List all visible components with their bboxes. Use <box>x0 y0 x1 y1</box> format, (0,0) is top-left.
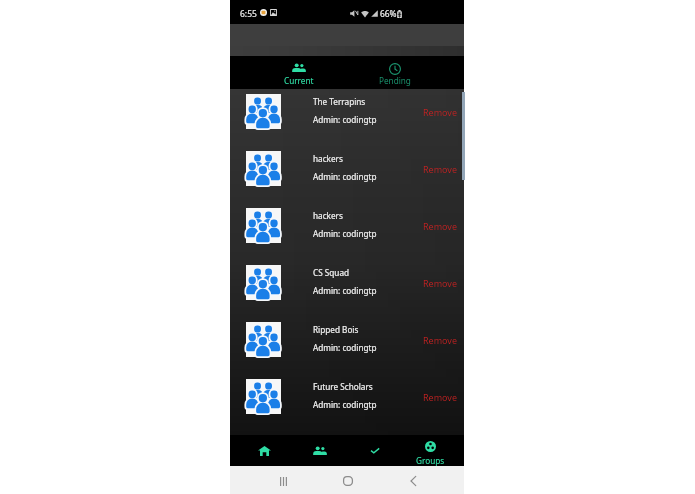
staticText: Admin: codingtp <box>313 342 377 353</box>
staticText: The Terrapins <box>313 96 366 107</box>
staticText: Groups <box>416 455 445 466</box>
button[interactable]: hackers <box>230 146 464 203</box>
staticText: Admin: codingtp <box>313 399 377 410</box>
button[interactable]: Remove <box>423 277 458 289</box>
button[interactable]: The Terrapins <box>230 89 464 146</box>
button[interactable]: Remove <box>423 220 458 232</box>
button[interactable]: Ripped Bois <box>230 317 464 374</box>
button[interactable]: Home <box>258 446 271 456</box>
button[interactable]: Tasks <box>370 447 380 454</box>
button[interactable]: Remove <box>423 106 458 118</box>
staticText: Remove <box>423 106 458 118</box>
staticText: 66% <box>380 8 397 19</box>
button[interactable]: Remove <box>423 334 458 346</box>
staticText: Remove <box>423 334 458 346</box>
staticText: Remove <box>423 220 458 232</box>
staticText: hackers <box>313 153 343 164</box>
button[interactable]: Remove <box>423 163 458 175</box>
staticText: Admin: codingtp <box>313 285 377 296</box>
staticText: 6:55 <box>240 8 257 20</box>
staticText: Remove <box>423 277 458 289</box>
staticText: Admin: codingtp <box>313 114 377 125</box>
button[interactable]: Members <box>313 446 327 455</box>
button[interactable]: Groups <box>412 435 448 466</box>
button[interactable]: Remove <box>423 391 458 403</box>
button[interactable]: Pending <box>347 57 443 89</box>
staticText: Future Scholars <box>313 381 373 392</box>
staticText: Admin: codingtp <box>313 171 377 182</box>
staticText: Current <box>284 75 314 86</box>
staticText: Pending <box>379 75 411 86</box>
button[interactable]: Future Scholars <box>230 374 464 431</box>
staticText: CS Squad <box>313 267 350 278</box>
staticText: Remove <box>423 163 458 175</box>
button[interactable]: hackers <box>230 203 464 260</box>
staticText: hackers <box>313 210 343 221</box>
button[interactable]: Current <box>251 57 347 89</box>
button[interactable]: CS Squad <box>230 260 464 317</box>
staticText: Ripped Bois <box>313 324 359 335</box>
staticText: Remove <box>423 391 458 403</box>
staticText: Admin: codingtp <box>313 228 377 239</box>
